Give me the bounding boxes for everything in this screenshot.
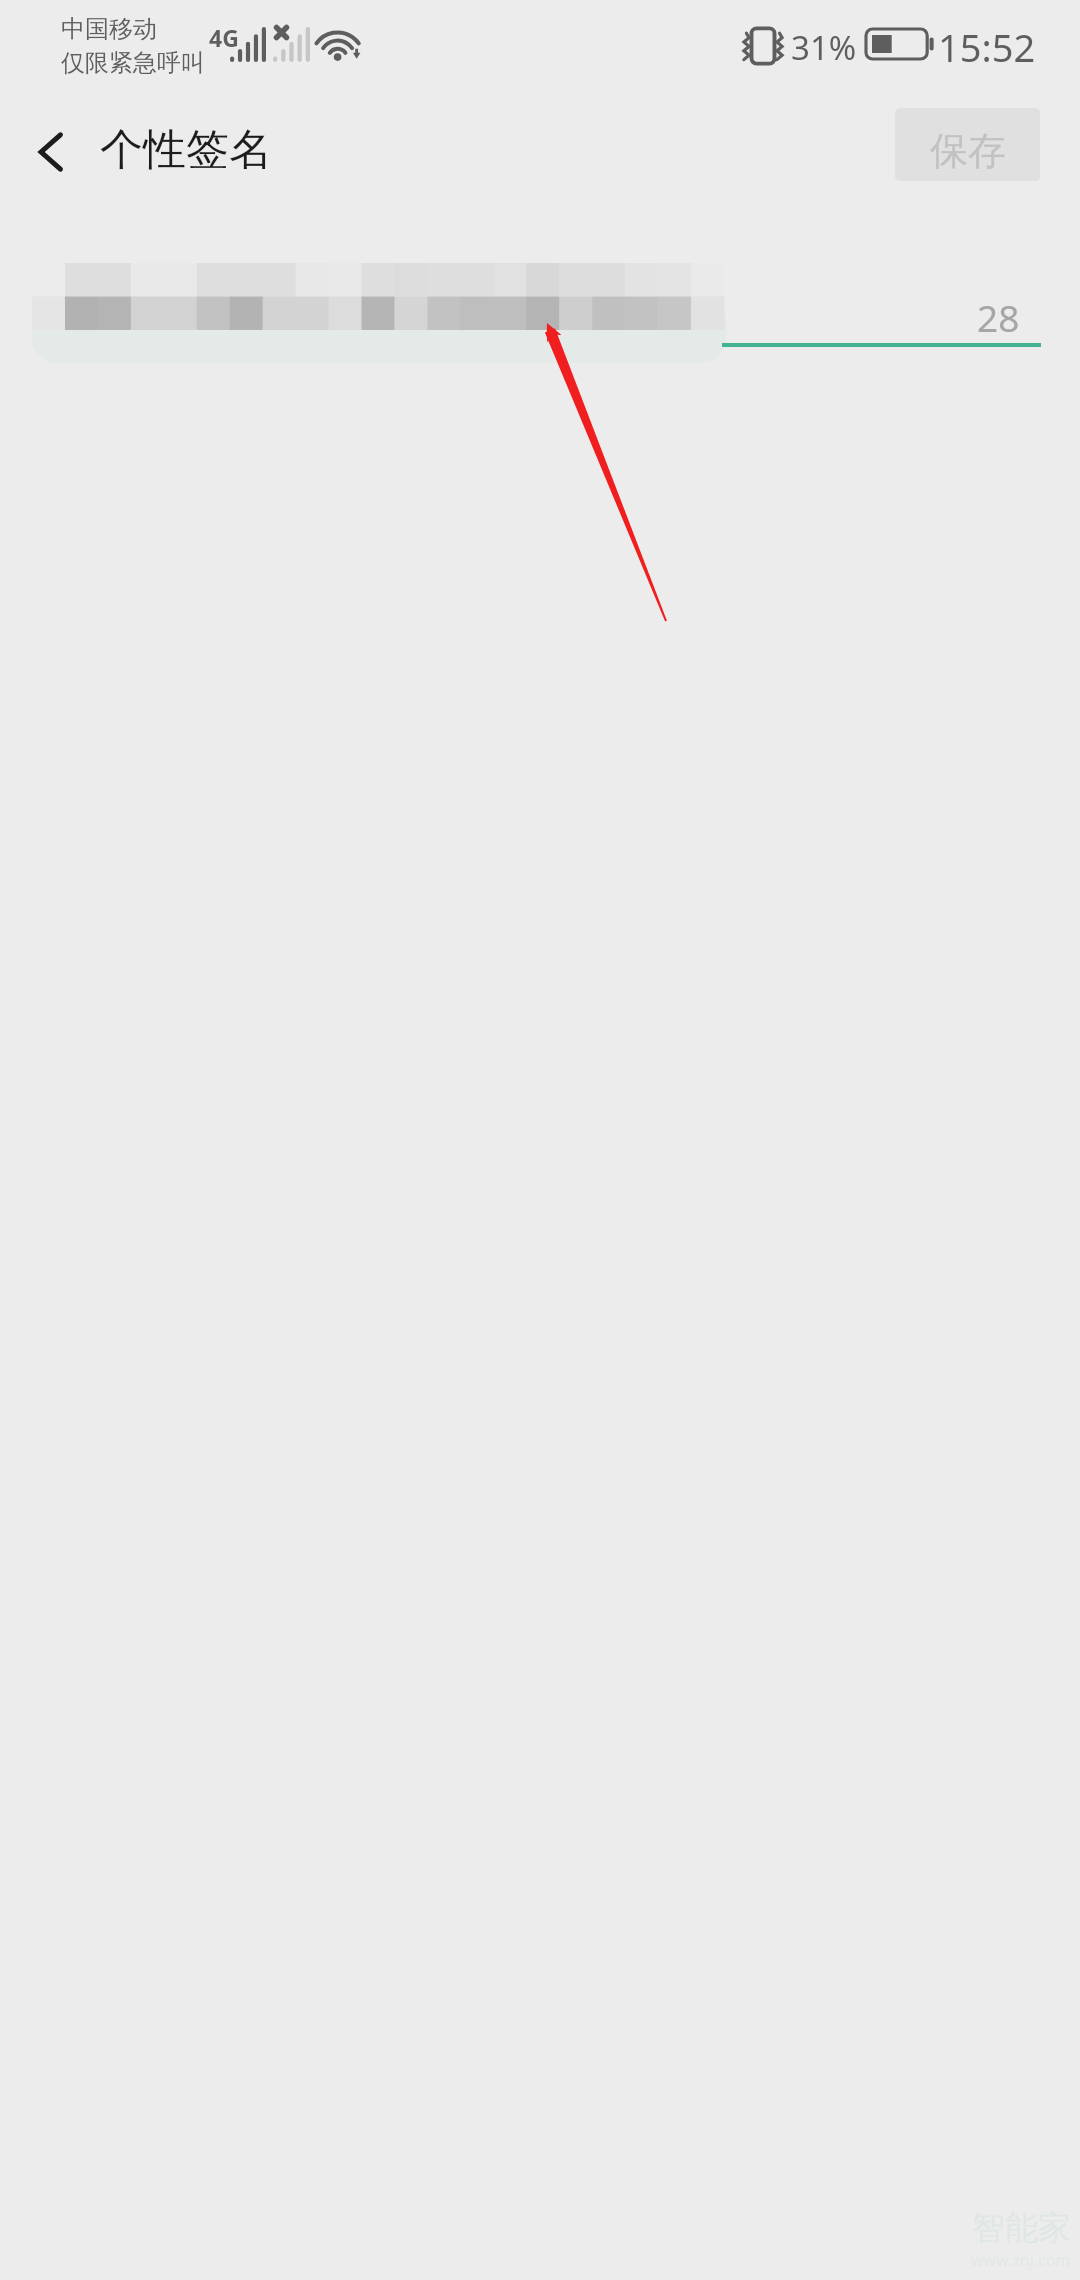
button[interactable]: 保存 (895, 108, 1040, 181)
staticText: 中国移动 (61, 14, 157, 44)
button[interactable]: Signature input (32, 297, 726, 363)
staticText: 仅限紧急呼叫 (61, 48, 205, 78)
staticText: 个性签名 (100, 123, 272, 177)
staticText: 28 (977, 292, 1020, 342)
staticText: 15:52 (938, 21, 1036, 73)
button[interactable]: Back (19, 119, 85, 185)
staticText: 保存 (930, 127, 1006, 175)
staticText: 4G (209, 22, 239, 53)
staticText: www.znj.com (971, 2249, 1071, 2271)
staticText: 31% (791, 25, 857, 70)
staticText: 智能家 (972, 2207, 1071, 2249)
